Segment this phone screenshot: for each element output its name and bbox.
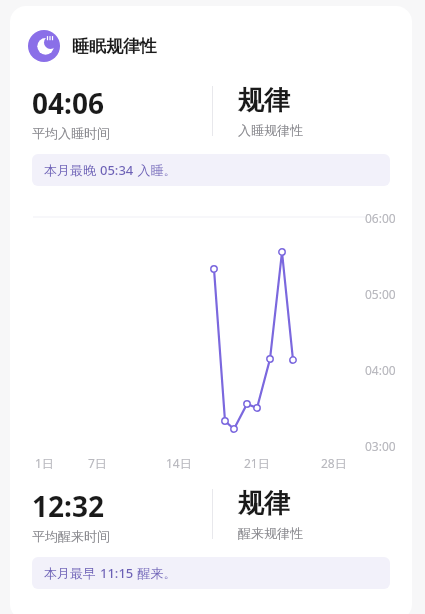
button[interactable]: 规律 — [238, 84, 303, 138]
button[interactable]: 本月最早 — [32, 557, 390, 589]
staticText: 04:00 — [365, 362, 396, 378]
staticText: 醒来规律性 — [238, 525, 303, 541]
staticText: 平均醒来时间 — [32, 528, 110, 543]
button[interactable]: 12:32 — [32, 487, 110, 543]
staticText: 03:00 — [365, 438, 396, 454]
staticText: 平均入睡时间 — [32, 125, 110, 140]
staticText: 12:32 — [32, 487, 104, 525]
staticText: 28日 — [321, 455, 347, 471]
button[interactable]: Sleep regularity — [10, 6, 412, 614]
other: Sleep regularity — [28, 30, 60, 62]
staticText: 醒来。 — [134, 564, 177, 582]
button[interactable]: 规律 — [238, 487, 303, 541]
button[interactable]: 06:00 — [10, 208, 412, 473]
staticText: 11:15 — [100, 564, 134, 582]
staticText: 21日 — [244, 455, 270, 471]
staticText: 05:00 — [365, 286, 396, 302]
staticText: 04:06 — [32, 84, 104, 122]
staticText: 14日 — [166, 455, 192, 471]
staticText: 入睡规律性 — [238, 122, 303, 138]
staticText: 入睡。 — [134, 161, 177, 179]
staticText: 睡眠规律性 — [72, 36, 157, 57]
staticText: 本月最晚 — [44, 161, 100, 179]
button[interactable]: Sleep regularity — [28, 30, 412, 62]
staticText: 7日 — [88, 455, 107, 471]
button[interactable]: 04:06 — [32, 84, 110, 140]
staticText: 规律 — [238, 487, 290, 520]
staticText: 05:34 — [100, 161, 134, 179]
staticText: 06:00 — [365, 210, 396, 226]
staticText: 本月最早 — [44, 564, 100, 582]
staticText: 规律 — [238, 84, 290, 117]
staticText: 1日 — [35, 455, 54, 471]
button[interactable]: 本月最晚 — [32, 154, 390, 186]
